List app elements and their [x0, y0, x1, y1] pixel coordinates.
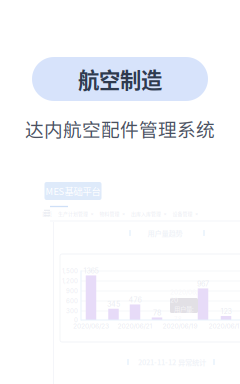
staticText: 2020/06/23	[73, 322, 109, 330]
staticText: 2020/06/19	[162, 322, 197, 330]
staticText: 2020/06/20	[170, 288, 198, 304]
staticText: ×	[122, 210, 125, 216]
staticText: 967	[197, 280, 209, 288]
staticText: 用户量趋势	[147, 228, 182, 238]
staticText: 1,500	[62, 267, 78, 275]
staticText: 78	[153, 309, 161, 317]
staticText: 1365	[83, 267, 98, 275]
staticText: MES基础平台	[45, 184, 100, 198]
staticText: 出库入库管理	[131, 210, 161, 217]
staticText: 物料管理	[99, 210, 119, 217]
staticText: 0	[74, 316, 78, 324]
staticText: 123	[220, 307, 231, 316]
staticText: 首页	[42, 210, 52, 217]
staticText: 900	[66, 287, 78, 295]
staticText: ×	[163, 210, 166, 216]
staticText: ×	[90, 210, 93, 216]
staticText: 2020/06/21	[117, 322, 152, 330]
staticText: 设备管理	[172, 210, 192, 217]
staticText: 2021-11-12 异常统计	[138, 357, 206, 367]
staticText: 2020/06/17	[208, 322, 240, 330]
staticText: 600	[66, 297, 78, 305]
staticText: 达内航空配件管理系统	[25, 115, 215, 142]
staticText: 生产计划管理	[58, 210, 88, 217]
staticText: 用户量: 78	[174, 305, 194, 323]
staticText: 476	[128, 296, 141, 304]
staticText: 300	[66, 307, 78, 315]
staticText: ×	[195, 210, 198, 216]
staticText: 1,200	[62, 277, 78, 285]
staticText: 航空制造	[78, 64, 162, 94]
staticText: 345	[107, 300, 120, 309]
